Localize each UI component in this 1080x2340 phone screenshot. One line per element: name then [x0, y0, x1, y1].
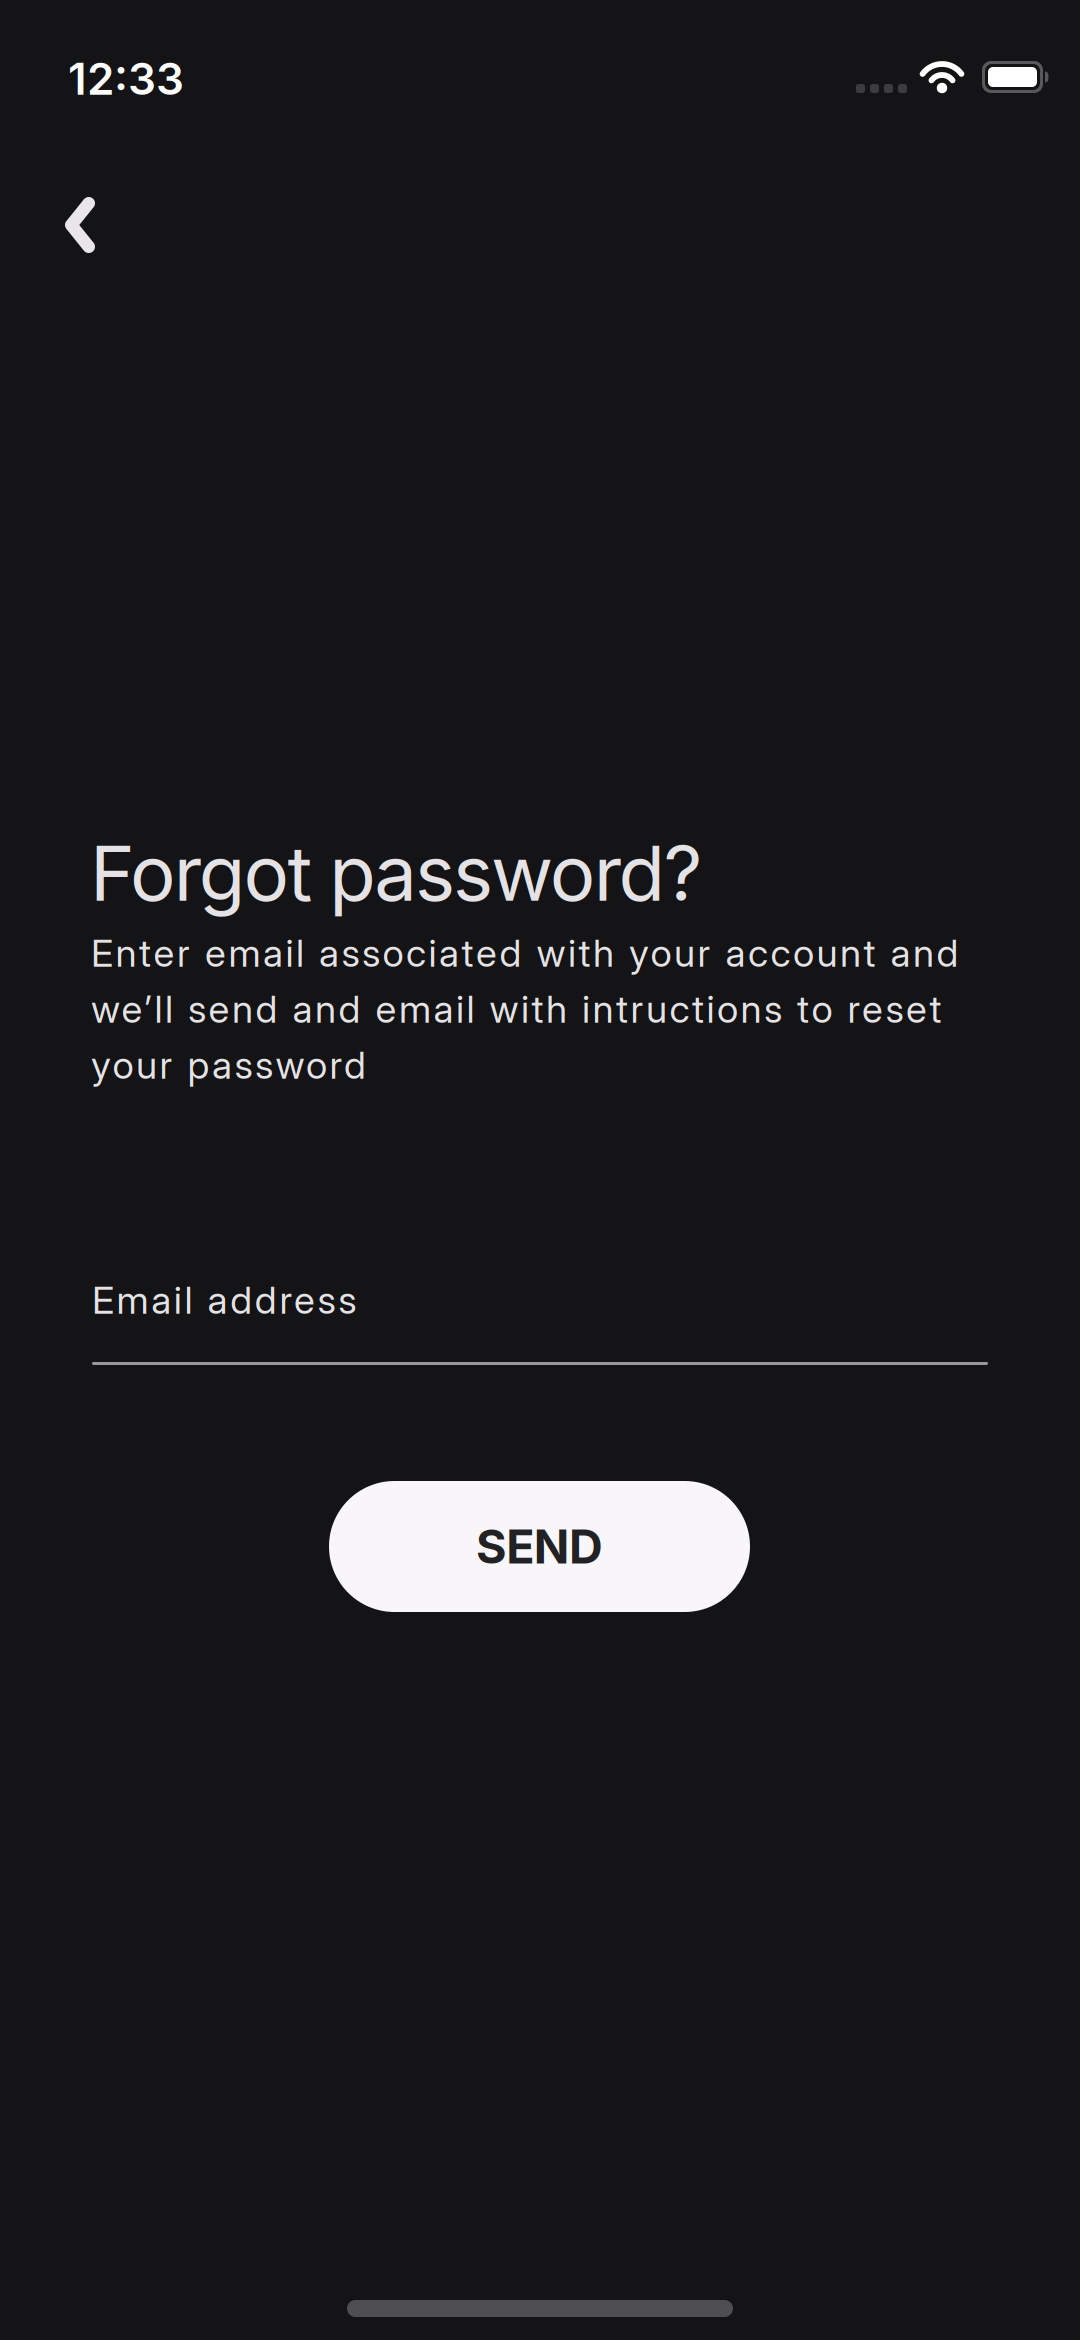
staticText: 12:33: [68, 52, 184, 105]
button[interactable]: Email address: [92, 1277, 988, 1365]
staticText: SEND: [476, 1518, 603, 1575]
staticText: Forgot password?: [90, 827, 702, 919]
button[interactable]: Back: [47, 183, 1080, 2340]
staticText: Email address: [92, 1277, 356, 1323]
button[interactable]: SEND: [329, 1481, 750, 1612]
staticText: Enter email associated with your account…: [91, 930, 958, 1088]
